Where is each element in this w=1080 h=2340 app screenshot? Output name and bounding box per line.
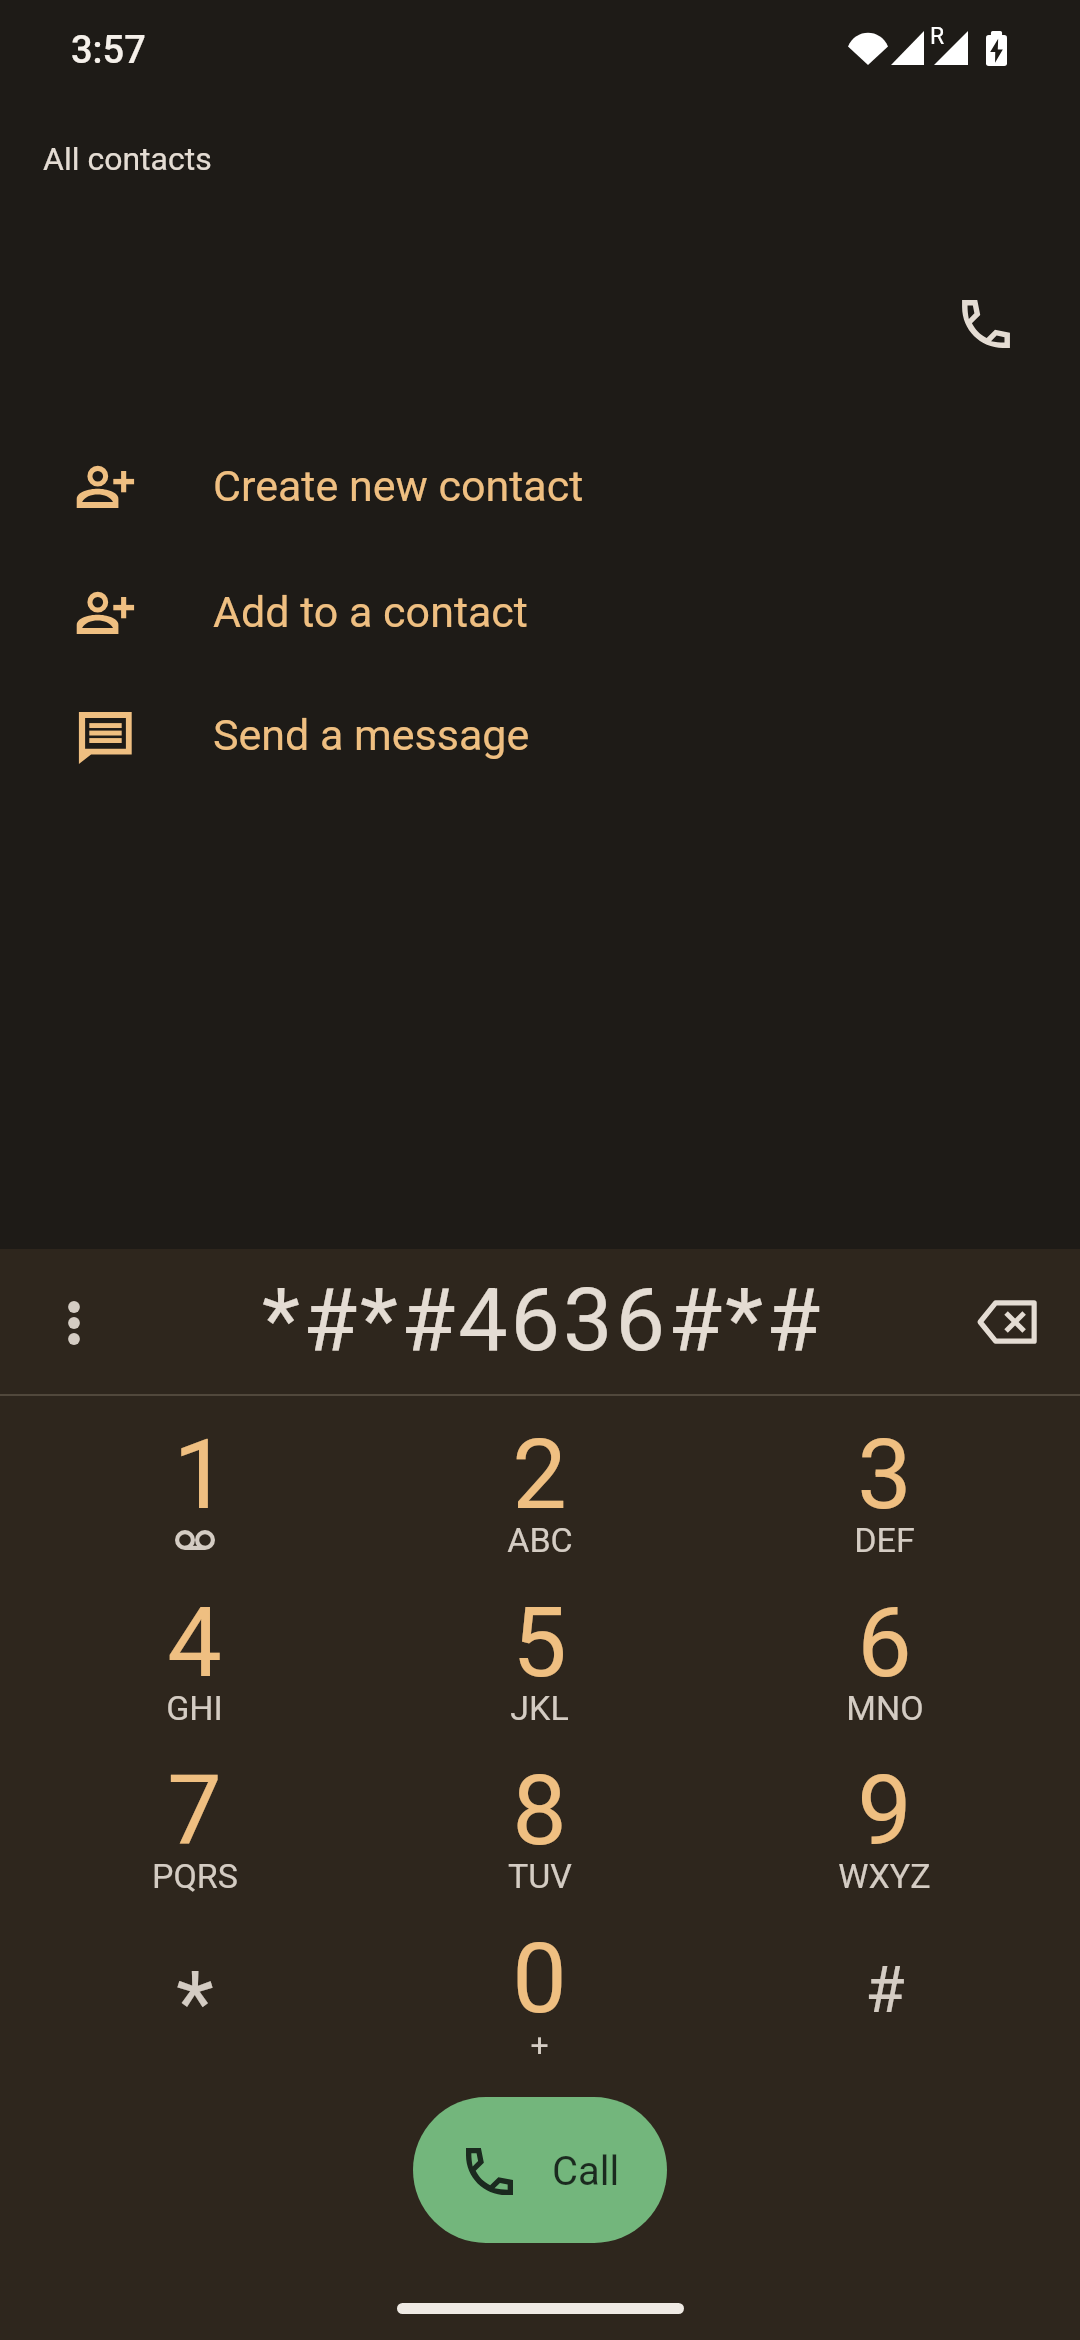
staticText: 4 bbox=[167, 1586, 222, 1700]
staticText: 8 bbox=[512, 1754, 567, 1868]
button[interactable]: Call bbox=[413, 2097, 667, 2243]
button[interactable]: 7 bbox=[22, 1733, 367, 1901]
staticText: + bbox=[530, 2026, 549, 2064]
button[interactable]: Create new contact bbox=[0, 426, 1080, 548]
staticText: WXYZ bbox=[838, 1856, 931, 1896]
button[interactable]: Send a message bbox=[0, 675, 1080, 797]
button[interactable]: 5 bbox=[367, 1565, 712, 1733]
staticText: 0 bbox=[512, 1922, 567, 2036]
staticText: # bbox=[865, 1953, 905, 2028]
staticText: Add to a contact bbox=[213, 587, 528, 637]
staticText: 3 bbox=[857, 1418, 912, 1532]
staticText: 5 bbox=[512, 1586, 567, 1700]
button[interactable]: 4 bbox=[22, 1565, 367, 1733]
button[interactable]: More options bbox=[30, 1279, 118, 1367]
button[interactable]: 0 bbox=[367, 1901, 712, 2069]
staticText: * bbox=[176, 1952, 214, 2054]
staticText: ABC bbox=[507, 1520, 573, 1560]
button[interactable]: All contacts bbox=[20, 125, 242, 193]
staticText: MNO bbox=[846, 1688, 924, 1728]
button[interactable]: 2 bbox=[367, 1397, 712, 1565]
button[interactable]: Add to a contact bbox=[0, 552, 1080, 674]
staticText: 3:57 bbox=[71, 28, 146, 73]
staticText: Send a message bbox=[213, 710, 530, 760]
staticText: JKL bbox=[510, 1688, 569, 1728]
staticText: Call bbox=[552, 2148, 620, 2195]
staticText: 9 bbox=[857, 1754, 912, 1868]
button[interactable]: * bbox=[22, 1901, 367, 2069]
staticText: TUV bbox=[508, 1856, 572, 1896]
staticText: 7 bbox=[167, 1754, 222, 1868]
button[interactable]: # bbox=[712, 1901, 1057, 2069]
button[interactable]: 9 bbox=[712, 1733, 1057, 1901]
staticText: 6 bbox=[857, 1586, 912, 1700]
staticText: 2 bbox=[512, 1418, 567, 1532]
staticText: Create new contact bbox=[213, 461, 584, 511]
button[interactable]: 3 bbox=[712, 1397, 1057, 1565]
staticText: All contacts bbox=[43, 140, 212, 178]
button[interactable]: 8 bbox=[367, 1733, 712, 1901]
staticText: R bbox=[930, 23, 945, 50]
button[interactable]: Backspace bbox=[963, 1278, 1051, 1366]
button[interactable]: 6 bbox=[712, 1565, 1057, 1733]
staticText: GHI bbox=[166, 1688, 223, 1728]
staticText: PQRS bbox=[152, 1856, 238, 1896]
button[interactable]: Dial pad bbox=[926, 264, 1046, 384]
button[interactable]: 1 bbox=[22, 1397, 367, 1565]
staticText: 1 bbox=[173, 1418, 228, 1532]
staticText: *#*#4636#*# bbox=[262, 1268, 824, 1371]
staticText: DEF bbox=[854, 1520, 915, 1560]
